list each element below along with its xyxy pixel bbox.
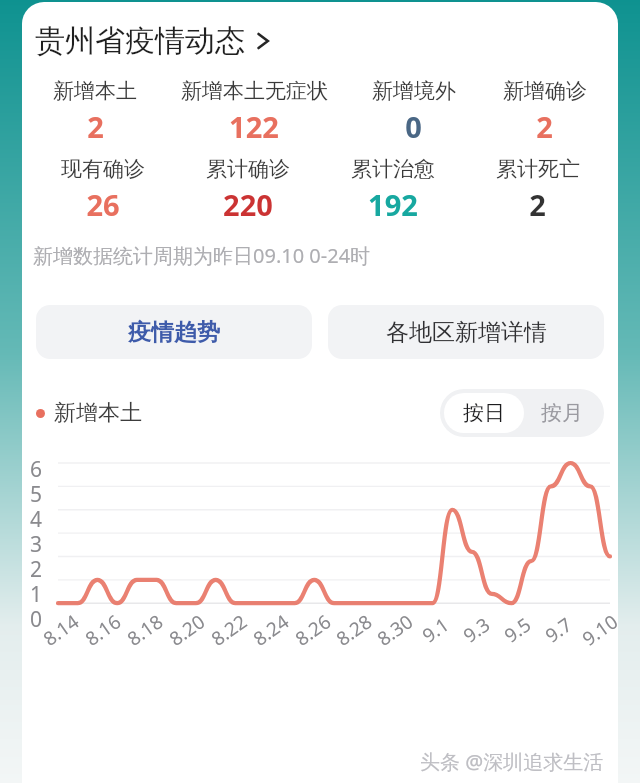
staticText: 3 [30,530,43,555]
staticText: 按日 [463,400,505,426]
staticText: 9.3 [458,612,495,648]
staticText: 1 [30,580,43,605]
staticText: 192 [368,185,418,224]
button[interactable]: 新增本土无症状 [160,78,348,146]
button[interactable]: 新增确诊 [479,78,610,146]
staticText: 9.10 [577,608,623,652]
staticText: 新增本土 [53,78,137,104]
button[interactable]: 累计死亡 [465,156,610,224]
staticText: 新增本土 [54,399,142,427]
button[interactable]: 新增本土 [30,78,160,146]
staticText: 各地区新增详情 [386,318,547,347]
staticText: 8.18 [122,608,168,652]
button[interactable]: 累计确诊 [175,156,320,224]
staticText: 122 [229,107,279,146]
staticText: 9.7 [540,612,577,648]
staticText: 现有确诊 [61,156,145,182]
staticText: 累计确诊 [206,156,290,182]
staticText: 疫情趋势 [128,318,220,347]
staticText: 4 [30,505,43,530]
button[interactable]: 按日 [444,393,524,433]
staticText: 0 [405,107,422,146]
staticText: 8.24 [248,608,294,652]
staticText: 新增境外 [372,78,456,104]
staticText: 220 [223,185,273,224]
button[interactable]: 各地区新增详情 [328,305,604,359]
button[interactable]: 按月 [524,393,600,433]
staticText: 2 [30,555,43,580]
staticText: 贵州省疫情动态 [35,22,245,60]
staticText: 9.5 [499,612,536,648]
staticText: 26 [86,185,120,224]
staticText: 8.28 [331,608,377,652]
button[interactable]: 疫情趋势 [36,305,312,359]
staticText: 0 [30,605,43,630]
staticText: 新增本土无症状 [181,78,328,104]
staticText: 2 [536,107,553,146]
staticText: 按月 [541,400,583,426]
staticText: 头条 @深圳追求生活 [420,748,604,775]
button[interactable]: 新增境外 [348,78,479,146]
staticText: 8.20 [164,608,210,652]
button[interactable]: 累计治愈 [320,156,465,224]
staticText: 累计死亡 [496,156,580,182]
staticText: 6 [30,455,43,480]
staticText: 新增数据统计周期为昨日09.10 0-24时 [33,242,371,269]
staticText: 8.14 [38,608,84,652]
button[interactable]: 现有确诊 [30,156,175,224]
staticText: 8.30 [372,608,418,652]
button[interactable]: 贵州省疫情动态 [35,22,271,60]
staticText: 8.16 [80,608,126,652]
staticText: 2 [529,185,546,224]
staticText: 2 [87,107,104,146]
staticText: 8.26 [290,608,336,652]
staticText: 8.22 [206,608,252,652]
staticText: 5 [30,480,43,505]
staticText: 新增确诊 [503,78,587,104]
staticText: 累计治愈 [351,156,435,182]
staticText: 9.1 [417,612,454,648]
